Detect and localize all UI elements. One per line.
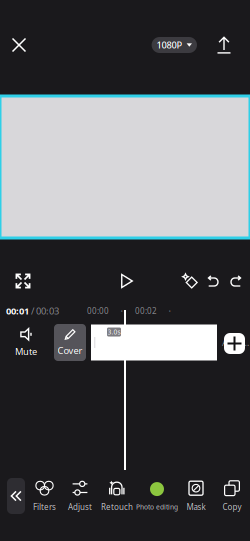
staticText: Filters	[33, 502, 56, 512]
button[interactable]: Collapse toolbar	[7, 478, 25, 514]
staticText: ·	[168, 305, 171, 317]
staticText: 00:02	[135, 306, 157, 316]
button[interactable]: Mute	[2, 324, 50, 360]
staticText: Add ite	[222, 336, 250, 349]
staticText: Mute	[15, 345, 37, 358]
button[interactable]: Close	[3, 28, 35, 62]
staticText: 3.0s	[107, 328, 120, 336]
button[interactable]: Adjust	[62, 476, 98, 516]
staticText: Cover	[57, 344, 82, 357]
button[interactable]: Photo editing	[136, 476, 178, 516]
button[interactable]: Add media	[224, 333, 245, 354]
staticText: 00:01	[6, 305, 29, 317]
button[interactable]: Filters	[27, 476, 62, 516]
staticText: 1080P	[157, 39, 183, 51]
staticText: Copy	[222, 502, 241, 512]
button[interactable]: Redo	[225, 266, 247, 296]
staticText: Adjust	[68, 502, 92, 512]
button[interactable]: Undo	[202, 266, 224, 296]
button[interactable]: Cover	[54, 324, 86, 361]
staticText: ·	[120, 305, 123, 317]
button[interactable]: 1080P	[152, 37, 197, 53]
button[interactable]: Export	[209, 28, 239, 62]
button[interactable]: Fullscreen	[6, 266, 40, 296]
staticText: Photo editing	[136, 503, 178, 511]
button[interactable]: Copy	[214, 476, 250, 516]
button[interactable]: Mask	[178, 476, 214, 516]
staticText: / 00:03	[29, 305, 59, 317]
staticText: Mask	[186, 502, 205, 512]
staticText: 00:00	[87, 306, 109, 316]
button[interactable]: Retouch	[98, 476, 136, 516]
button[interactable]: Add keyframe	[179, 266, 201, 296]
button[interactable]: Play	[112, 266, 142, 296]
staticText: Retouch	[101, 502, 133, 512]
